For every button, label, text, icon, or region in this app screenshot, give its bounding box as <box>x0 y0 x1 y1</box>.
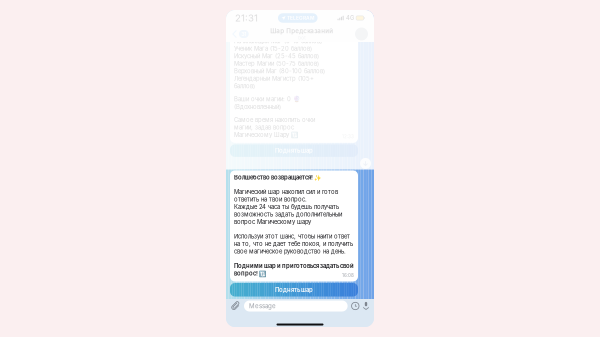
button[interactable]: Поднять шар <box>230 144 358 157</box>
staticText: Начинающий Маг (0-10 баллов) Ученик Мага… <box>234 38 325 90</box>
button[interactable]: Schedule message <box>352 302 359 310</box>
staticText: TELEGRAM <box>287 15 314 21</box>
button[interactable]: Record voice message <box>363 301 369 310</box>
button[interactable]: Profile <box>355 27 368 40</box>
staticText: 4G <box>346 15 354 21</box>
button[interactable]: Back <box>232 30 249 38</box>
staticText: Шар Предсказаний <box>270 27 333 35</box>
staticText: 31 <box>241 31 246 37</box>
staticText: Поднять шар <box>275 147 313 154</box>
button[interactable]: Scroll to bottom <box>360 158 371 169</box>
button[interactable]: Поднять шар <box>230 283 358 296</box>
staticText: 16:08 <box>342 272 354 278</box>
staticText: Ваши очки магии: 0 🔮 (Вдохновлённый) <box>234 96 300 110</box>
staticText: Поднять шар <box>275 286 313 293</box>
staticText: Самое время накопить очки магии, задав в… <box>234 116 315 138</box>
staticText: 21:31 <box>235 12 258 24</box>
staticText: Волшебство возвращается! ✨ <box>234 174 321 181</box>
staticText: Подними шар и приготовься задать свой во… <box>234 262 354 277</box>
button[interactable]: Attach <box>231 301 240 310</box>
staticText: Используй этот шанс, чтобы найти ответ н… <box>234 233 353 255</box>
staticText: Магический шар накопил сил и готов ответ… <box>234 188 342 225</box>
staticText: Message <box>249 302 276 310</box>
